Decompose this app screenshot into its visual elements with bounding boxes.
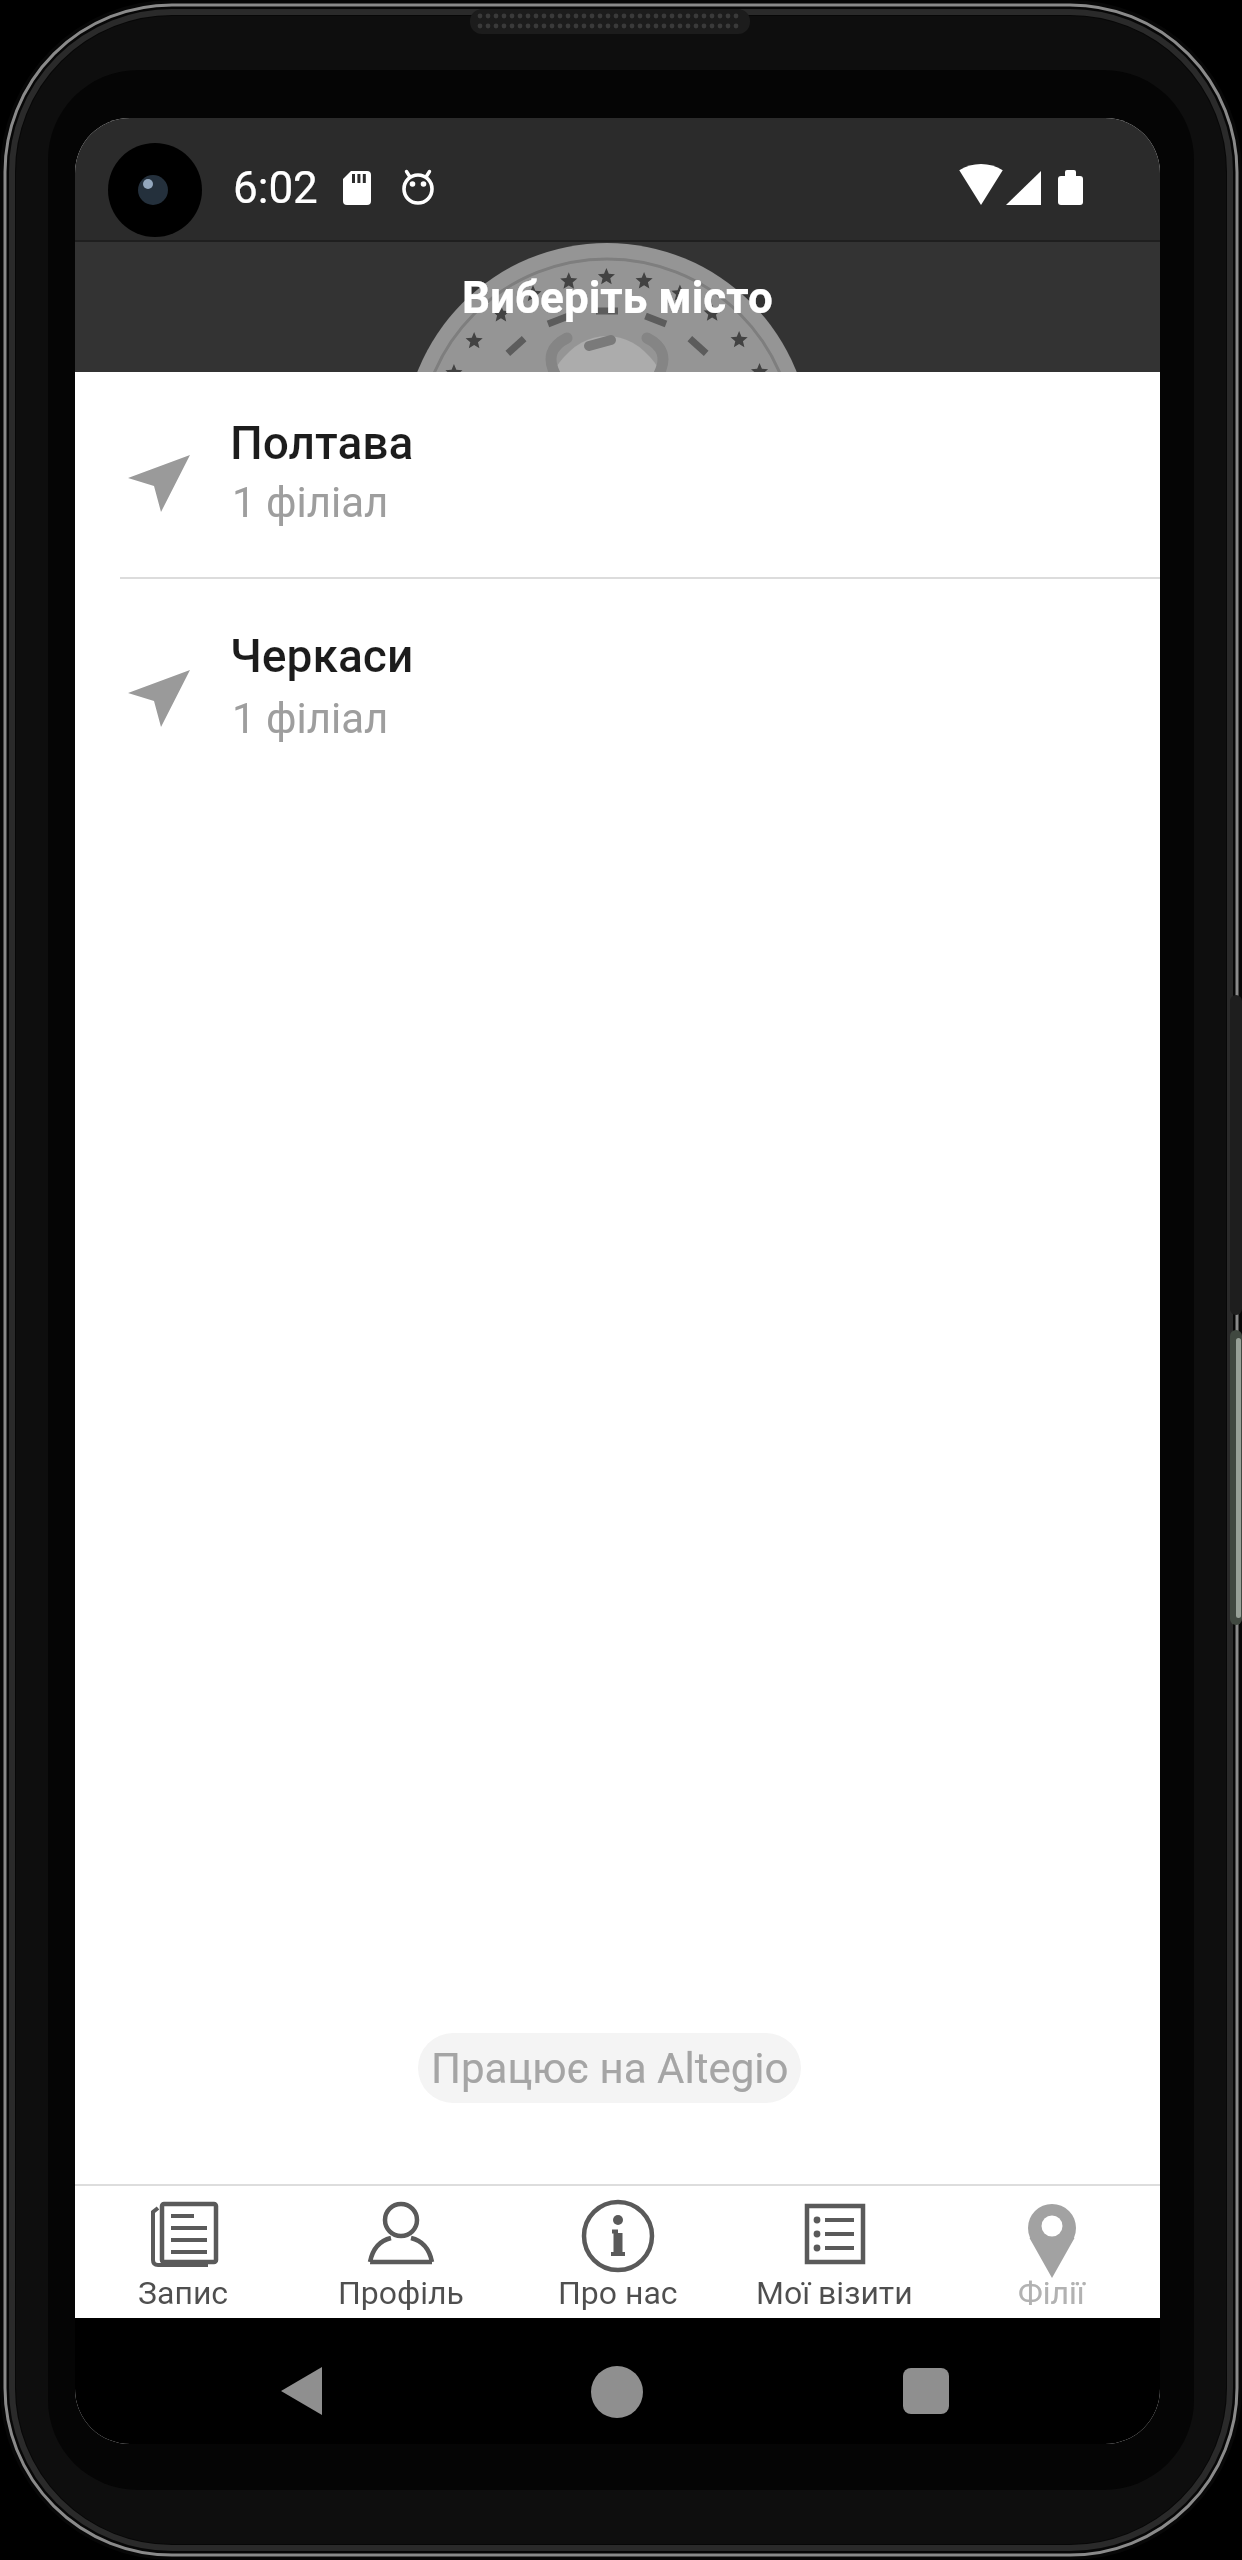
button[interactable]: Мої візити <box>726 2186 943 2318</box>
button[interactable]: Про нас <box>509 2186 726 2318</box>
staticText: Профіль <box>338 2274 464 2312</box>
staticText: 1 філіал <box>232 478 389 527</box>
button[interactable]: Запис <box>75 2186 292 2318</box>
staticText: Мої візити <box>756 2274 913 2312</box>
button[interactable]: Філії <box>943 2186 1160 2318</box>
staticText: Про нас <box>558 2274 678 2312</box>
staticText: Виберіть місто <box>462 272 773 324</box>
button[interactable]: Профіль <box>292 2186 509 2318</box>
staticText: 1 філіал <box>232 694 389 743</box>
staticText: Черкаси <box>230 629 414 683</box>
staticText: Філії <box>1018 2274 1085 2312</box>
staticText: 6:02 <box>233 162 318 214</box>
staticText: Полтава <box>230 416 414 470</box>
staticText: Працює на Altegio <box>431 2044 789 2093</box>
staticText: Запис <box>138 2274 229 2312</box>
button[interactable]: Полтава <box>75 372 1160 577</box>
button[interactable]: Працює на Altegio <box>418 2033 801 2103</box>
button[interactable]: Черкаси <box>75 579 1160 829</box>
